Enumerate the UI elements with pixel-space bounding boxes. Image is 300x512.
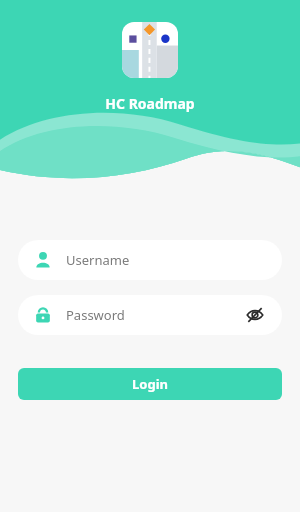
button[interactable]: Login xyxy=(18,368,282,400)
staticText: Login xyxy=(132,375,168,393)
button[interactable]: Show password xyxy=(244,304,266,326)
staticText: HC Roadmap xyxy=(105,94,195,113)
staticText: Password xyxy=(66,306,244,324)
button[interactable]: Password xyxy=(18,295,282,335)
staticText: Username xyxy=(66,251,266,269)
button[interactable]: Username xyxy=(18,240,282,280)
